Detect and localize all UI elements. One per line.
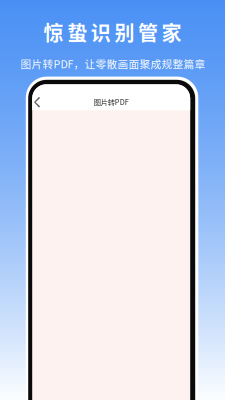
button[interactable]: 返回 bbox=[33, 93, 47, 110]
staticText: 别 bbox=[114, 18, 134, 47]
staticText: 图片转PDF bbox=[94, 96, 129, 107]
staticText: 识 bbox=[91, 18, 111, 47]
staticText: 管 bbox=[138, 18, 158, 47]
staticText: 蛰 bbox=[67, 18, 87, 47]
staticText: 惊 bbox=[44, 18, 64, 47]
staticText: 家 bbox=[162, 18, 182, 47]
staticText: 图片转PDF，让零散画面聚成规整篇章 bbox=[20, 56, 205, 71]
